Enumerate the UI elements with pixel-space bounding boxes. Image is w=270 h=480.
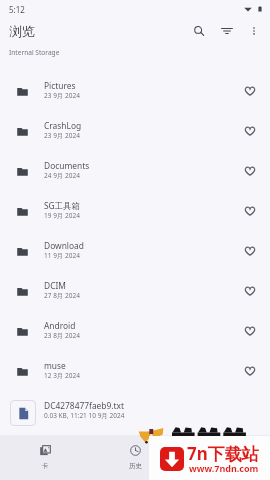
staticText: Android [44, 320, 76, 331]
button[interactable]: Documents [0, 151, 270, 191]
staticText: 5:12 [9, 4, 25, 15]
staticText: Pictures [44, 80, 76, 91]
staticText: Documents [44, 160, 90, 171]
button[interactable]: Favorite [238, 79, 262, 103]
staticText: CrashLog [44, 120, 82, 131]
button[interactable]: SG工具箱 [0, 191, 270, 231]
staticText: Download [44, 240, 84, 251]
button[interactable]: Android [0, 311, 270, 351]
staticText: 23 9月 2024 [44, 131, 80, 140]
staticText: 浏览 [219, 462, 232, 470]
button[interactable]: Favorite [238, 159, 262, 183]
staticText: www.7ndn.com [189, 462, 259, 474]
staticText: 23 9月 2024 [44, 91, 80, 100]
button[interactable]: Pictures [0, 71, 270, 111]
staticText: 7n下载站 [187, 442, 259, 465]
button[interactable]: Sort [214, 18, 240, 44]
button[interactable]: Favorite [238, 239, 262, 263]
button[interactable]: DC4278477faeb9.txt [0, 391, 270, 431]
staticText: 23 8月 2024 [44, 331, 80, 340]
staticText: 27 8月 2024 [44, 291, 80, 300]
staticText: 12 3月 2024 [44, 371, 80, 380]
staticText: 卡 [42, 462, 49, 470]
staticText: 浏览 [9, 23, 35, 39]
staticText: SG工具箱 [44, 200, 80, 211]
button[interactable]: 卡 [15, 435, 75, 480]
staticText: 24 9月 2024 [44, 171, 80, 180]
button[interactable]: More options [241, 18, 267, 44]
button[interactable]: Favorite [238, 199, 262, 223]
button[interactable]: DCIM [0, 271, 270, 311]
staticText: DC4278477faeb9.txt [44, 400, 125, 411]
button[interactable]: Download [0, 231, 270, 271]
staticText: Internal Storage [9, 48, 60, 57]
button[interactable]: Favorite [238, 359, 262, 383]
staticText: 11 9月 2024 [44, 251, 80, 260]
staticText: DCIM [44, 280, 66, 291]
staticText: 历史 [129, 462, 142, 470]
staticText: 19 9月 2024 [44, 211, 80, 220]
staticText: muse [44, 360, 66, 371]
staticText: 0.03 KB, 11:21 10 9月 2024 [44, 411, 125, 420]
button[interactable]: muse [0, 351, 270, 391]
button[interactable]: Favorite [238, 279, 262, 303]
button[interactable]: Favorite [238, 119, 262, 143]
button[interactable]: 浏览 [195, 435, 255, 480]
button[interactable]: 历史 [105, 435, 165, 480]
button[interactable]: CrashLog [0, 111, 270, 151]
button[interactable]: Search [186, 18, 212, 44]
button[interactable]: Favorite [238, 319, 262, 343]
